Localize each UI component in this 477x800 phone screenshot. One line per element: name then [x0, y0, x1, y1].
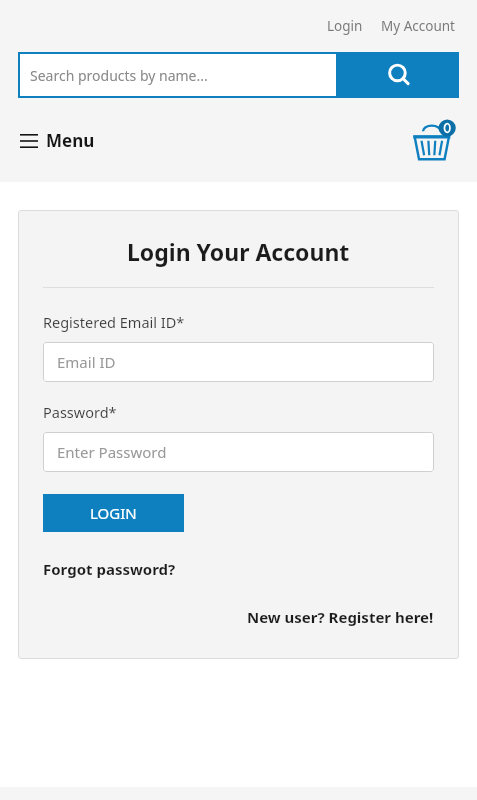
staticText: Forgot password? [43, 559, 176, 579]
staticText: Search products by name... [30, 66, 208, 85]
button[interactable]: Menu [18, 123, 97, 158]
button[interactable]: New user? Register here! [247, 605, 434, 629]
button[interactable]: Forgot password? [43, 557, 176, 581]
button[interactable]: Email ID [43, 342, 434, 382]
staticText: Password* [43, 402, 117, 422]
staticText: Login [327, 17, 363, 35]
button[interactable]: Search products by name... [18, 52, 338, 98]
button[interactable]: LOGIN [43, 494, 184, 532]
staticText: Registered Email ID* [43, 312, 185, 332]
staticText: Login Your Account [127, 236, 350, 267]
staticText: Enter Password [57, 442, 167, 462]
button[interactable]: Login [323, 13, 367, 39]
button[interactable]: My Account [377, 13, 459, 39]
staticText: LOGIN [90, 503, 137, 523]
staticText: My Account [381, 17, 455, 35]
staticText: Menu [46, 129, 95, 152]
button[interactable]: Enter Password [43, 432, 434, 472]
staticText: New user? Register here! [247, 607, 434, 627]
button[interactable]: Cart, 0 items [407, 118, 461, 162]
button[interactable]: Search [338, 52, 459, 98]
staticText: Email ID [57, 352, 116, 372]
